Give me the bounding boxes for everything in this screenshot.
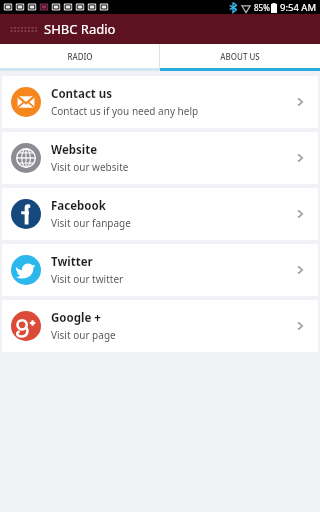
other: Contact us xyxy=(11,87,41,117)
button[interactable]: Twitter xyxy=(2,244,318,296)
staticText: Twitter xyxy=(51,254,93,270)
staticText: Visit our website xyxy=(51,160,129,174)
staticText: 9:54 AM xyxy=(280,1,317,14)
staticText: Visit our twitter xyxy=(51,272,124,286)
staticText: Google + xyxy=(51,310,101,326)
staticText: 85% xyxy=(254,2,270,13)
other: Google Plus xyxy=(11,311,41,341)
staticText: ABOUT US xyxy=(220,51,260,62)
button[interactable]: Facebook xyxy=(2,188,318,240)
staticText: Contact us if you need any help xyxy=(51,104,199,118)
staticText: Visit our page xyxy=(51,328,116,342)
button[interactable]: Google Plus xyxy=(2,300,318,352)
other: Website xyxy=(11,143,41,173)
button[interactable]: Contact us xyxy=(2,76,318,128)
staticText: Website xyxy=(51,142,98,158)
staticText: SHBC Radio xyxy=(44,20,116,38)
staticText: Facebook xyxy=(51,198,106,214)
button[interactable]: RADIO xyxy=(0,44,159,68)
other: Facebook xyxy=(11,199,41,229)
staticText: Contact us xyxy=(51,86,113,102)
other: Twitter xyxy=(11,255,41,285)
staticText: Visit our fanpage xyxy=(51,216,131,230)
button[interactable]: ABOUT US xyxy=(160,44,320,68)
button[interactable]: Website xyxy=(2,132,318,184)
staticText: RADIO xyxy=(67,51,93,62)
